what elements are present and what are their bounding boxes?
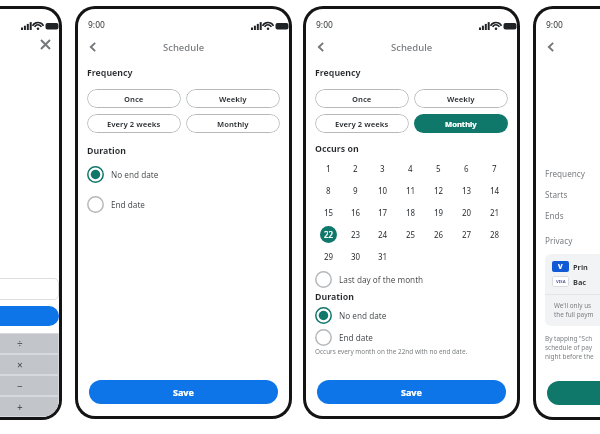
staticText: Duration [87, 145, 126, 157]
button[interactable]: + [0, 397, 58, 416]
button[interactable]: VISA [552, 276, 587, 287]
staticText: Monthly [217, 119, 249, 129]
button[interactable]: 25 [402, 226, 419, 243]
button[interactable]: S [547, 381, 600, 405]
staticText: 25 [406, 229, 416, 240]
button[interactable]: No end date [315, 303, 508, 327]
button[interactable]: 23 [347, 226, 364, 243]
staticText: 10 [378, 185, 388, 196]
button[interactable]: 8 [320, 182, 337, 199]
button[interactable]: 1 [320, 160, 337, 177]
button[interactable]: 17 [374, 204, 391, 221]
staticText: the full paym [554, 310, 594, 319]
button[interactable]: Every 2 weeks [315, 114, 409, 133]
staticText: 9:00 [316, 19, 333, 31]
button[interactable]: 18 [402, 204, 419, 221]
staticText: 26 [434, 229, 444, 240]
staticText: 15 [324, 207, 334, 218]
button[interactable]: 5 [430, 160, 447, 177]
button[interactable]: 15 [320, 204, 337, 221]
button[interactable]: 20 [458, 204, 475, 221]
staticText: 20 [462, 207, 472, 218]
staticText: Monthly [445, 119, 477, 129]
button[interactable]: Back [84, 38, 102, 56]
button[interactable]: ÷ [0, 334, 58, 353]
button[interactable]: 9 [347, 182, 364, 199]
staticText: Weekly [447, 94, 475, 104]
button[interactable]: 28 [486, 226, 503, 243]
button[interactable]: 21 [486, 204, 503, 221]
button[interactable]: Back [542, 38, 560, 56]
staticText: Save [173, 386, 194, 398]
staticText: 14 [490, 185, 500, 196]
button[interactable]: 6 [458, 160, 475, 177]
staticText: ÷ [17, 337, 23, 351]
staticText: By tapping "Sch [545, 334, 593, 343]
staticText: 5 [436, 163, 441, 174]
staticText: Prin [573, 262, 588, 272]
staticText: V [558, 262, 563, 272]
button[interactable]: Save [89, 380, 278, 404]
button[interactable]: End date [87, 191, 280, 217]
button[interactable]: 11 [402, 182, 419, 199]
button[interactable]: 4 [402, 160, 419, 177]
staticText: 27 [462, 229, 472, 240]
staticText: Last day of the month [339, 274, 424, 285]
staticText: × [17, 358, 23, 372]
button[interactable]: Every 2 weeks [87, 114, 181, 133]
button[interactable]: 2 [347, 160, 364, 177]
button[interactable]: 14 [486, 182, 503, 199]
staticText: Frequency [545, 168, 585, 179]
button[interactable]: No end date [87, 161, 280, 187]
staticText: 13 [462, 185, 472, 196]
button[interactable]: 27 [458, 226, 475, 243]
staticText: Once [124, 94, 144, 104]
staticText: Privacy [545, 235, 573, 246]
button[interactable]: 3 [374, 160, 391, 177]
button[interactable]: Last day of the month [315, 267, 508, 291]
staticText: End date [339, 332, 373, 343]
button[interactable]: V [552, 261, 588, 272]
staticText: VISA [556, 279, 566, 285]
button[interactable]: End date [315, 327, 508, 347]
button[interactable]: 22 [320, 226, 337, 243]
staticText: Every 2 weeks [107, 119, 161, 129]
button[interactable]: 24 [374, 226, 391, 243]
staticText: 29 [324, 251, 334, 262]
button[interactable]: 19 [430, 204, 447, 221]
button[interactable]: 7 [486, 160, 503, 177]
button[interactable]: Pay [0, 306, 59, 326]
staticText: Frequency [315, 67, 361, 79]
button[interactable]: Close [38, 37, 52, 51]
button[interactable]: 30 [347, 248, 364, 265]
button[interactable]: 29 [320, 248, 337, 265]
staticText: − [17, 379, 23, 393]
button[interactable]: Monthly [186, 114, 280, 133]
button[interactable]: 31 [374, 248, 391, 265]
staticText: 1 [326, 163, 331, 174]
button[interactable]: 12 [430, 182, 447, 199]
button[interactable]: 26 [430, 226, 447, 243]
staticText: Once [352, 94, 372, 104]
button[interactable]: Once [87, 89, 181, 108]
button[interactable]: 10 [374, 182, 391, 199]
staticText: Schedule [163, 41, 205, 54]
button[interactable]: Back [312, 38, 330, 56]
staticText: Occurs every month on the 22nd with no e… [315, 347, 468, 356]
button[interactable]: Monthly [414, 114, 508, 133]
button[interactable]: Once [315, 89, 409, 108]
staticText: 18 [406, 207, 416, 218]
button[interactable]: 16 [347, 204, 364, 221]
staticText: 22 [324, 229, 334, 240]
button[interactable]: × [0, 355, 58, 374]
button[interactable]: − [0, 376, 58, 395]
button[interactable]: Save [317, 380, 506, 404]
button[interactable]: Weekly [414, 89, 508, 108]
staticText: + [17, 400, 23, 414]
staticText: Duration [315, 291, 354, 303]
staticText: No end date [111, 169, 159, 180]
button[interactable]: 13 [458, 182, 475, 199]
staticText: 9:00 [88, 19, 105, 31]
button[interactable]: Weekly [186, 89, 280, 108]
staticText: night before the [545, 352, 594, 361]
